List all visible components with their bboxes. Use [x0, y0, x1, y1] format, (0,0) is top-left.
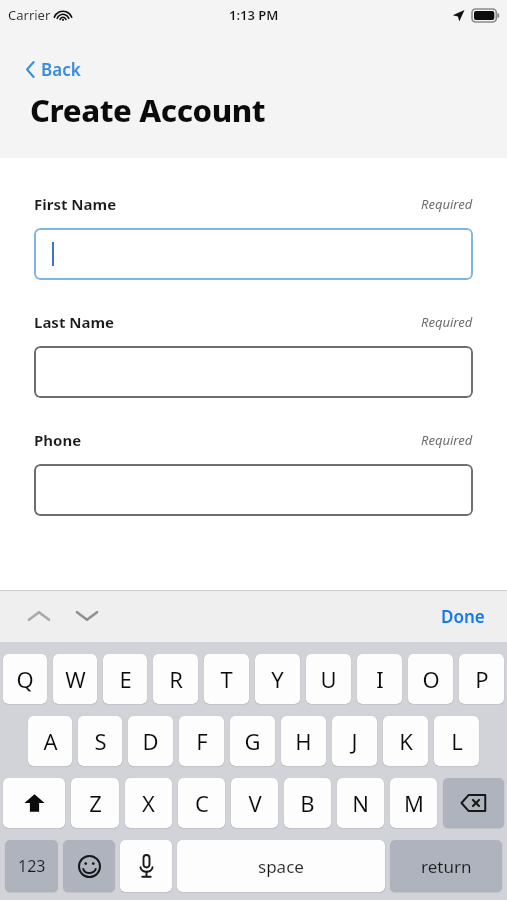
button[interactable]: Shift — [3, 778, 65, 828]
staticText: Create Account — [30, 89, 266, 131]
staticText: return — [421, 855, 472, 878]
staticText: I — [376, 664, 384, 694]
button[interactable]: V — [231, 778, 278, 828]
button[interactable]: Dictation — [120, 840, 172, 892]
staticText: M — [404, 788, 424, 818]
button[interactable]: return — [390, 840, 502, 892]
staticText: A — [43, 726, 58, 756]
button[interactable]: Q — [3, 654, 47, 704]
staticText: E — [119, 664, 132, 694]
button[interactable]: O — [408, 654, 453, 704]
staticText: N — [352, 788, 369, 818]
button[interactable]: E — [103, 654, 147, 704]
button[interactable]: X — [125, 778, 172, 828]
button[interactable]: K — [383, 716, 428, 766]
button[interactable]: Emoji — [63, 840, 115, 892]
staticText: F — [196, 726, 208, 756]
button[interactable]: D — [128, 716, 173, 766]
staticText: G — [244, 726, 261, 756]
button[interactable]: J — [332, 716, 377, 766]
staticText: B — [300, 788, 315, 818]
button[interactable]: B — [284, 778, 331, 828]
button[interactable]: S — [78, 716, 122, 766]
staticText: Required — [421, 431, 473, 449]
button[interactable] — [34, 464, 473, 516]
button[interactable]: space — [177, 840, 385, 892]
button[interactable]: Next field — [70, 599, 104, 633]
button[interactable]: F — [179, 716, 224, 766]
button[interactable]: M — [390, 778, 437, 828]
staticText: 123 — [18, 855, 46, 877]
staticText: P — [475, 664, 489, 694]
staticText: X — [142, 788, 155, 818]
button[interactable] — [34, 346, 473, 398]
button[interactable]: U — [306, 654, 351, 704]
staticText: Done — [441, 605, 485, 628]
button[interactable]: H — [281, 716, 326, 766]
button[interactable]: Back — [26, 56, 89, 83]
staticText: T — [220, 664, 233, 694]
staticText: Z — [89, 788, 102, 818]
staticText: Phone — [34, 430, 82, 450]
button[interactable]: Y — [255, 654, 300, 704]
button[interactable]: R — [153, 654, 198, 704]
staticText: W — [65, 664, 86, 694]
button[interactable]: Z — [71, 778, 119, 828]
button[interactable]: C — [178, 778, 225, 828]
button[interactable]: W — [53, 654, 97, 704]
staticText: Carrier — [8, 6, 51, 24]
button[interactable]: 123 — [5, 840, 58, 892]
staticText: V — [248, 788, 262, 818]
staticText: Back — [41, 58, 81, 81]
staticText: K — [399, 726, 413, 756]
staticText: 1:13 PM — [229, 6, 279, 24]
staticText: S — [94, 726, 107, 756]
staticText: Q — [16, 664, 34, 694]
staticText: First Name — [34, 194, 117, 214]
button[interactable]: A — [28, 716, 72, 766]
button[interactable]: T — [204, 654, 249, 704]
staticText: R — [169, 664, 183, 694]
staticText: Last Name — [34, 312, 115, 332]
button[interactable]: N — [337, 778, 384, 828]
staticText: space — [258, 855, 304, 878]
button[interactable]: Previous field — [22, 599, 56, 633]
staticText: D — [142, 726, 159, 756]
button[interactable]: G — [230, 716, 275, 766]
staticText: H — [295, 726, 312, 756]
button[interactable]: Backspace — [443, 778, 504, 828]
staticText: C — [195, 788, 209, 818]
staticText: J — [351, 726, 358, 756]
staticText: L — [451, 726, 463, 756]
button[interactable]: Done — [419, 597, 507, 636]
staticText: Required — [421, 195, 473, 213]
button[interactable]: I — [357, 654, 402, 704]
staticText: O — [422, 664, 440, 694]
button[interactable]: L — [434, 716, 479, 766]
button[interactable] — [34, 228, 473, 280]
staticText: Required — [421, 313, 473, 331]
button[interactable]: P — [459, 654, 504, 704]
staticText: U — [320, 664, 337, 694]
staticText: Y — [271, 664, 284, 694]
